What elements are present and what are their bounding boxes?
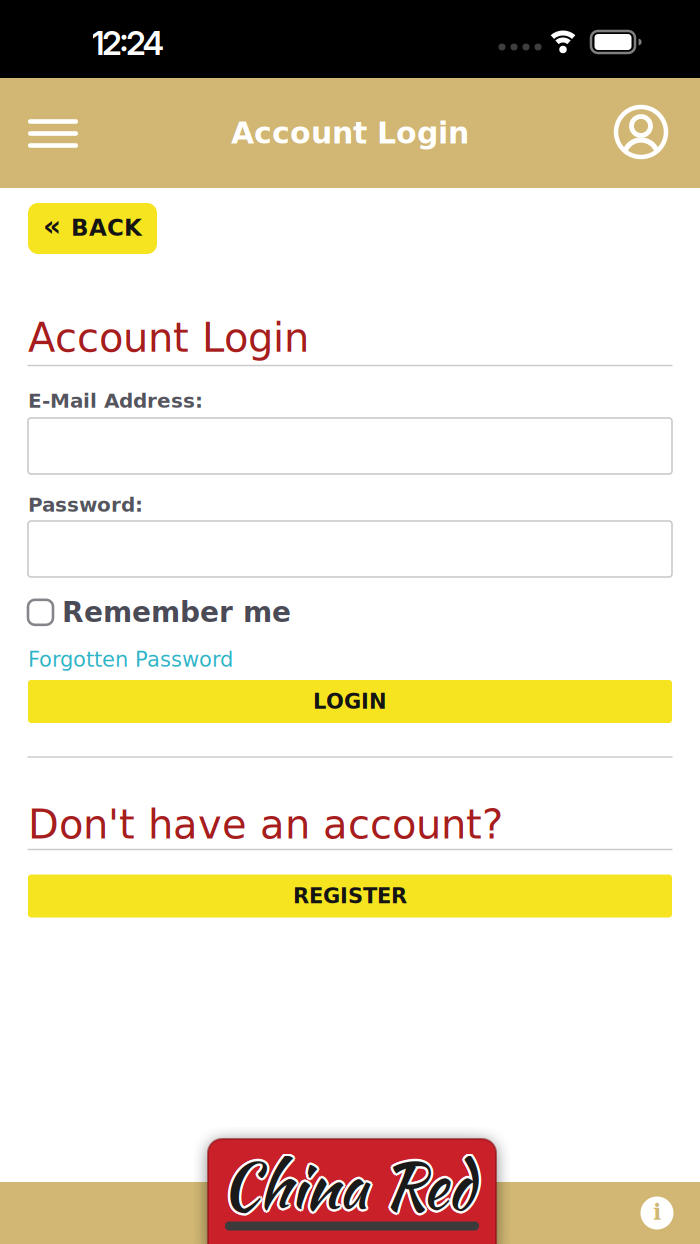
staticText: E-Mail Address: xyxy=(28,389,203,412)
button[interactable]: Remember me xyxy=(28,590,672,634)
button[interactable]: Menu xyxy=(21,105,85,161)
staticText: China Red xyxy=(221,1138,474,1228)
staticText: China Red xyxy=(220,1139,473,1229)
button[interactable]: Account xyxy=(612,103,670,161)
staticText: Account Login xyxy=(28,315,309,361)
staticText: China Red xyxy=(221,1143,474,1233)
button[interactable]: « BACK xyxy=(28,203,157,254)
staticText: « BACK xyxy=(43,210,142,242)
staticText: 12:24 xyxy=(91,23,164,63)
staticText: Forgotten Password xyxy=(28,647,233,672)
staticText: China Red xyxy=(223,1143,476,1233)
staticText: Don't have an account? xyxy=(28,801,503,848)
staticText: REGISTER xyxy=(293,884,407,908)
staticText: i xyxy=(653,1199,661,1225)
staticText: Remember me xyxy=(62,596,291,629)
staticText: China Red xyxy=(223,1139,476,1229)
button[interactable]: Info xyxy=(637,1193,677,1233)
staticText: China Red xyxy=(221,1141,474,1231)
button[interactable]: Forgotten Password xyxy=(28,642,672,676)
staticText: Password: xyxy=(28,493,143,516)
staticText: Account Login xyxy=(231,115,469,150)
button[interactable]: REGISTER xyxy=(28,874,672,917)
staticText: China Red xyxy=(219,1141,472,1231)
staticText: LOGIN xyxy=(313,689,387,714)
staticText: China Red xyxy=(224,1141,477,1231)
button[interactable]: LOGIN xyxy=(28,680,672,723)
staticText: China Red xyxy=(220,1143,473,1233)
